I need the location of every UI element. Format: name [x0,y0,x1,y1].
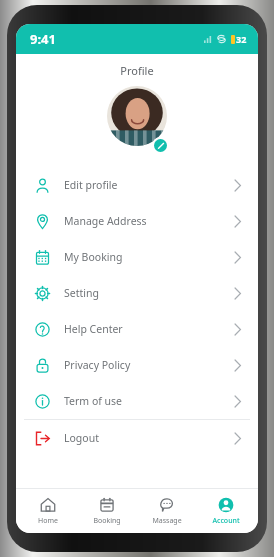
staticText: Profile [16,63,258,78]
button[interactable]: Term of use [16,383,258,419]
button[interactable]: Setting [16,275,258,311]
staticText: Account [212,516,240,526]
button[interactable]: Edit profile [16,167,258,203]
staticText: My Booking [64,250,234,264]
staticText: Home [38,516,58,526]
staticText: 32 [236,33,247,45]
staticText: Setting [64,286,234,300]
staticText: Manage Address [64,214,234,228]
staticText: Logout [64,431,234,445]
button[interactable]: Account [199,494,253,529]
button[interactable]: Home [21,494,75,529]
button[interactable]: Logout [16,420,258,456]
button[interactable]: Privacy Policy [16,347,258,383]
staticText: 9:41 [30,30,56,48]
button[interactable]: Manage Address [16,203,258,239]
button[interactable]: Help Center [16,311,258,347]
button[interactable]: Massage [140,494,194,529]
staticText: Help Center [64,322,234,336]
button[interactable]: Booking [80,494,134,529]
button[interactable]: Edit photo [154,139,167,152]
staticText: Edit profile [64,178,234,192]
staticText: Massage [152,516,182,526]
staticText: Term of use [64,394,234,408]
button[interactable]: My Booking [16,239,258,275]
staticText: Booking [93,516,121,526]
staticText: Privacy Policy [64,358,234,372]
